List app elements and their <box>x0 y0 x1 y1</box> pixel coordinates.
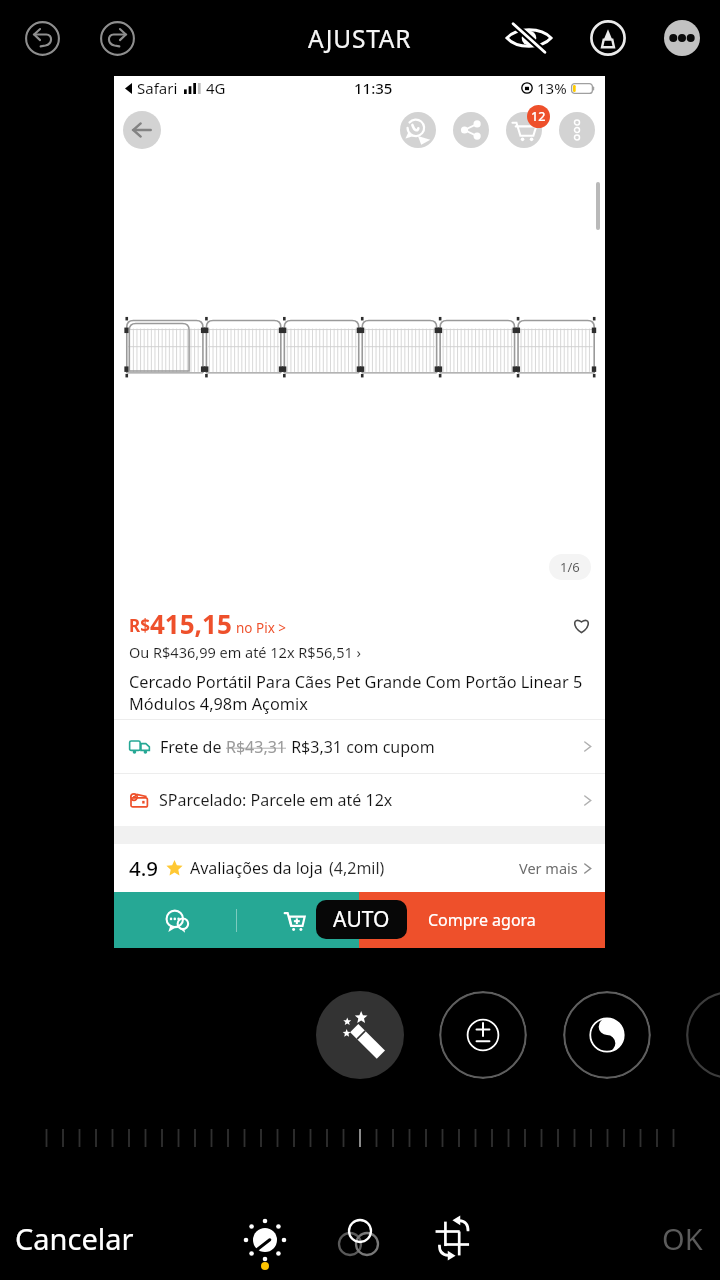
staticText: 415,15 <box>150 606 232 641</box>
staticText: OK <box>662 1219 703 1258</box>
button[interactable]: AUTO <box>316 900 407 939</box>
staticText: Cercado Portátil Para Cães Pet Grande Co… <box>129 671 592 715</box>
button[interactable]: Frete de <box>114 720 605 773</box>
button[interactable]: Share on WhatsApp <box>400 112 436 148</box>
button[interactable]: OK <box>652 1211 713 1266</box>
staticText: Safari <box>137 78 178 98</box>
button[interactable]: Filters <box>328 1205 392 1269</box>
button[interactable]: Redo <box>92 13 142 63</box>
button[interactable]: Contrast <box>563 991 651 1079</box>
staticText: 4.9 <box>129 854 159 882</box>
button[interactable]: SParcelado: Parcele em até 12x <box>114 774 605 826</box>
staticText: 1/6 <box>560 558 580 576</box>
staticText: SParcelado: Parcele em até 12x <box>159 789 393 811</box>
button[interactable]: Cart <box>506 112 542 148</box>
button[interactable]: Draw <box>583 13 633 63</box>
staticText: 12 <box>531 108 546 125</box>
staticText: (4,2mil) <box>329 857 385 879</box>
staticText: 13% <box>537 78 567 98</box>
staticText: Ver mais <box>519 858 578 878</box>
staticText: Cancelar <box>15 1219 134 1258</box>
button[interactable]: AJUSTAR <box>300 13 420 63</box>
button[interactable]: Adjust <box>233 1208 297 1272</box>
staticText: 11:35 <box>354 78 393 98</box>
button[interactable] <box>114 892 359 948</box>
staticText: Avaliações da loja <box>190 857 323 879</box>
button[interactable]: Compre agora <box>359 892 605 948</box>
button[interactable]: More options <box>664 20 700 56</box>
button[interactable]: Share <box>453 112 489 148</box>
staticText: Compre agora <box>428 909 536 931</box>
button[interactable]: More <box>559 112 595 148</box>
staticText: R$3,31 com cupom <box>287 736 435 758</box>
staticText: R$43,31 <box>226 736 287 758</box>
button[interactable]: Back <box>123 111 161 149</box>
staticText: R$ <box>129 614 150 637</box>
staticText: AUTO <box>333 905 390 934</box>
button[interactable]: Brightness <box>439 991 527 1079</box>
button[interactable]: Auto enhance <box>316 991 404 1079</box>
staticText: no Pix > <box>236 619 287 637</box>
staticText: AJUSTAR <box>308 22 412 55</box>
button[interactable]: 4.9 <box>114 844 605 892</box>
staticText: Frete de <box>160 736 226 758</box>
button[interactable]: Undo <box>17 13 67 63</box>
staticText: Ou R$436,99 em até 12x R$56,51 › <box>129 642 361 662</box>
button[interactable]: Hide <box>504 13 554 63</box>
button[interactable]: Cancelar <box>5 1211 144 1266</box>
button[interactable]: Crop and rotate <box>422 1206 486 1270</box>
staticText: 4G <box>206 78 226 98</box>
